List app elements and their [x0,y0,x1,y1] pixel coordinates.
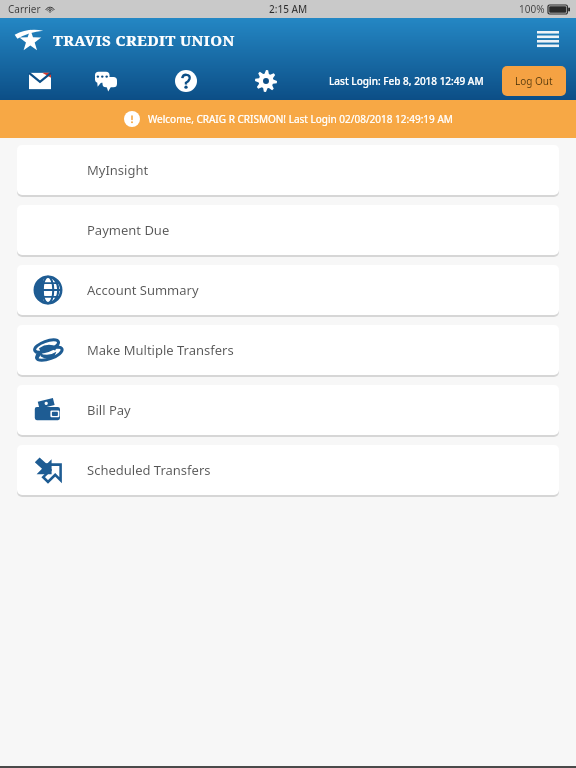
button[interactable]: Account Summary [17,265,559,315]
staticText: Payment Due [87,221,170,239]
staticText: Carrier [8,2,41,16]
button[interactable]: Bill Pay [17,385,559,435]
button[interactable]: Messages [14,63,66,99]
staticText: MyInsight [87,161,149,179]
button[interactable]: Payment Due [17,205,559,255]
button[interactable]: Scheduled Transfers [17,445,559,495]
staticText: Last Login: Feb 8, 2018 12:49 AM [329,74,484,88]
staticText: Make Multiple Transfers [87,341,234,359]
staticText: Account Summary [87,281,199,299]
staticText: 2:15 AM [269,2,308,16]
staticText: Log Out [515,74,553,88]
button[interactable]: Settings [226,63,306,99]
button[interactable]: Make Multiple Transfers [17,325,559,375]
button[interactable]: Help [146,63,226,99]
button[interactable]: MyInsight [17,145,559,195]
button[interactable]: Log Out [502,66,566,96]
staticText: 100% [519,2,545,16]
button[interactable]: Chat [66,63,146,99]
staticText: Bill Pay [87,401,131,419]
button[interactable]: Menu [530,22,566,58]
staticText: Scheduled Transfers [87,461,211,479]
staticText: Welcome, CRAIG R CRISMON! Last Login 02/… [148,112,453,126]
staticText: TRAVIS CREDIT UNION [53,30,235,50]
